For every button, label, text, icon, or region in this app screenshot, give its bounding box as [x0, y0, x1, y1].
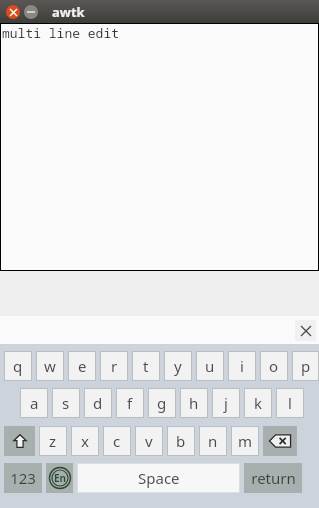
button[interactable]: Shift: [4, 426, 35, 456]
button[interactable]: c: [103, 426, 131, 456]
button[interactable]: u: [196, 351, 224, 381]
staticText: 123: [10, 468, 36, 488]
staticText: n: [208, 431, 218, 451]
button[interactable]: y: [164, 351, 192, 381]
button[interactable]: Minimize: [24, 5, 38, 19]
staticText: d: [93, 393, 103, 413]
staticText: multi line edit: [2, 24, 120, 42]
button[interactable]: p: [292, 351, 319, 381]
staticText: x: [81, 431, 89, 451]
button[interactable]: n: [199, 426, 227, 456]
button[interactable]: t: [132, 351, 160, 381]
button[interactable]: i: [228, 351, 256, 381]
button[interactable]: j: [212, 388, 240, 418]
button[interactable]: r: [100, 351, 128, 381]
button[interactable]: Close keyboard: [295, 320, 316, 341]
staticText: u: [205, 356, 215, 376]
staticText: g: [157, 393, 167, 413]
staticText: s: [62, 393, 70, 413]
staticText: p: [301, 356, 311, 376]
staticText: f: [127, 393, 133, 413]
button[interactable]: x: [71, 426, 99, 456]
staticText: j: [224, 393, 228, 413]
button[interactable]: multi line edit: [0, 23, 319, 271]
button[interactable]: q: [4, 351, 32, 381]
button[interactable]: e: [68, 351, 96, 381]
button[interactable]: d: [84, 388, 112, 418]
staticText: awtk: [52, 3, 85, 21]
button[interactable]: l: [276, 388, 304, 418]
staticText: Space: [138, 468, 180, 488]
button[interactable]: o: [260, 351, 288, 381]
staticText: k: [254, 393, 263, 413]
staticText: w: [44, 356, 56, 376]
button[interactable]: k: [244, 388, 272, 418]
staticText: m: [238, 431, 253, 451]
button[interactable]: Space: [77, 463, 240, 493]
button[interactable]: Close: [6, 5, 20, 19]
staticText: c: [113, 431, 121, 451]
staticText: a: [30, 393, 39, 413]
staticText: o: [269, 356, 279, 376]
staticText: q: [13, 356, 23, 376]
staticText: i: [240, 356, 244, 376]
button[interactable]: b: [167, 426, 195, 456]
staticText: r: [111, 356, 118, 376]
button[interactable]: return: [244, 463, 302, 493]
button[interactable]: a: [20, 388, 48, 418]
staticText: En: [54, 471, 67, 485]
button[interactable]: 123: [4, 463, 42, 493]
staticText: e: [78, 356, 87, 376]
button[interactable]: Language English: [46, 463, 73, 493]
staticText: y: [174, 356, 182, 376]
button[interactable]: g: [148, 388, 176, 418]
button[interactable]: f: [116, 388, 144, 418]
staticText: l: [288, 393, 292, 413]
staticText: v: [145, 431, 153, 451]
button[interactable]: v: [135, 426, 163, 456]
button[interactable]: h: [180, 388, 208, 418]
button[interactable]: z: [39, 426, 67, 456]
staticText: t: [143, 356, 149, 376]
staticText: b: [176, 431, 186, 451]
staticText: z: [49, 431, 57, 451]
button[interactable]: Backspace: [263, 426, 297, 456]
staticText: return: [251, 468, 296, 488]
button[interactable]: m: [231, 426, 259, 456]
button[interactable]: s: [52, 388, 80, 418]
button[interactable]: w: [36, 351, 64, 381]
staticText: h: [189, 393, 199, 413]
